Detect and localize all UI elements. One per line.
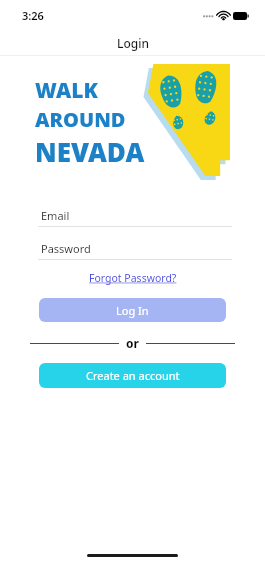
staticText: Login (117, 35, 149, 51)
staticText: Forgot Password? (89, 271, 177, 285)
button[interactable]: Create an account (39, 363, 226, 388)
staticText: AROUND (35, 106, 126, 133)
staticText: WALK (35, 76, 98, 105)
button[interactable]: Log In (39, 298, 226, 322)
button[interactable]: Email (0, 204, 265, 227)
staticText: 3:26 (22, 8, 44, 23)
staticText: Password (41, 241, 91, 256)
button[interactable]: Forgot Password? (83, 269, 183, 287)
staticText: Log In (116, 303, 149, 318)
staticText: Email (41, 208, 70, 223)
staticText: NEVADA (35, 134, 145, 169)
staticText: or (126, 335, 139, 351)
button[interactable]: Password (0, 237, 265, 260)
staticText: Create an account (86, 368, 180, 383)
